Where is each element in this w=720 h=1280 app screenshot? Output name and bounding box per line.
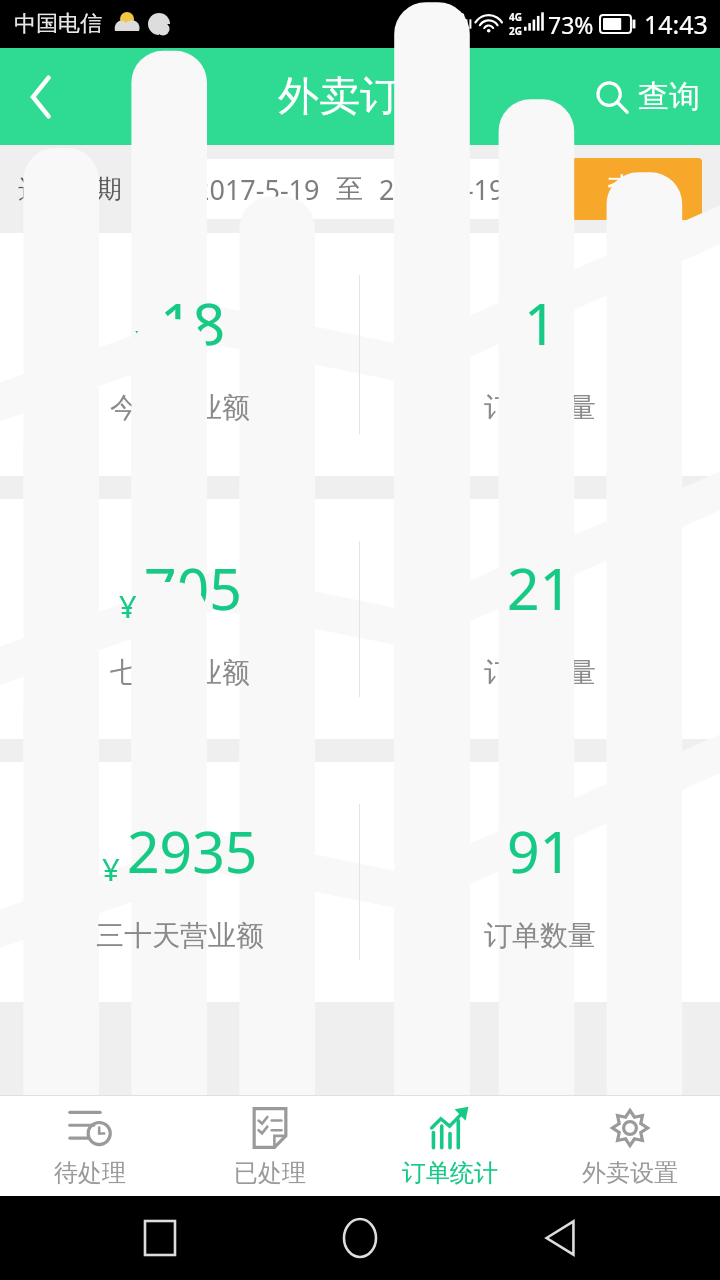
staticText: 订单数量	[484, 655, 596, 690]
staticText: 今日营业额	[110, 390, 250, 425]
button[interactable]: 订单统计	[360, 1096, 540, 1196]
staticText: 14:43	[644, 7, 708, 41]
button[interactable]: ¥	[0, 499, 359, 739]
staticText: 18	[160, 284, 226, 362]
staticText: 2017-5-19	[379, 171, 505, 208]
button[interactable]: 待处理	[0, 1096, 180, 1196]
staticText: ¥	[119, 585, 137, 627]
staticText: 1	[524, 284, 557, 362]
button[interactable]: 查询	[578, 48, 720, 145]
button[interactable]: 返回	[0, 48, 84, 145]
button[interactable]: 2017-5-19	[144, 159, 554, 219]
staticText: 91	[507, 812, 573, 890]
button[interactable]: 已处理	[180, 1096, 360, 1196]
staticText: 外卖设置	[582, 1158, 678, 1188]
staticText: 订单数量	[484, 918, 596, 953]
staticText: 订单统计	[402, 1158, 498, 1188]
staticText: 73%	[548, 9, 594, 40]
staticText: 中国电信	[14, 10, 102, 38]
staticText: 4G	[509, 10, 522, 24]
button[interactable]: 21	[360, 499, 720, 739]
staticText: 七日营业额	[110, 655, 250, 690]
staticText: 2935	[127, 812, 258, 890]
staticText: ¥	[102, 848, 120, 890]
staticText: 外卖订单	[278, 71, 442, 123]
staticText: 三十天营业额	[96, 918, 264, 953]
button[interactable]: ¥	[0, 762, 359, 1002]
staticText: 21	[507, 549, 573, 627]
button[interactable]: Home	[320, 1198, 400, 1278]
staticText: 查询	[607, 170, 667, 208]
button[interactable]: 外卖设置	[540, 1096, 720, 1196]
staticText: 已处理	[234, 1158, 306, 1188]
button[interactable]: ¥	[0, 233, 359, 476]
staticText: 2017-5-19	[194, 171, 320, 208]
staticText: 待处理	[54, 1158, 126, 1188]
button[interactable]: Recents	[120, 1198, 200, 1278]
staticText: 至	[336, 172, 363, 206]
button[interactable]: 查询	[572, 158, 702, 220]
staticText: 订单数量	[484, 390, 596, 425]
button[interactable]: 1	[360, 233, 720, 476]
button[interactable]: Back	[520, 1198, 600, 1278]
button[interactable]: 91	[360, 762, 720, 1002]
staticText: ¥	[135, 320, 153, 362]
staticText: 705	[144, 549, 242, 627]
staticText: 2G	[509, 24, 522, 38]
staticText: 选择日期	[18, 173, 122, 206]
staticText: 查询	[638, 77, 700, 116]
